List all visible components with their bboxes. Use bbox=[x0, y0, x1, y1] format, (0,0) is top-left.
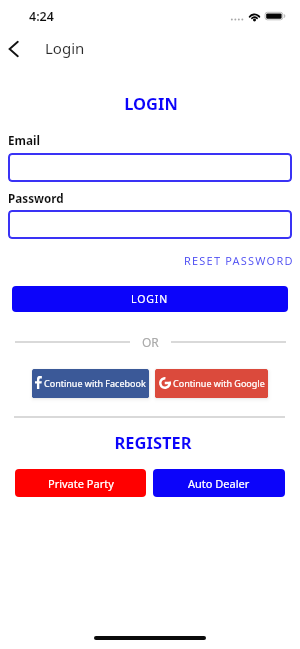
staticText: LOGIN bbox=[131, 292, 169, 306]
button[interactable]: LOGIN bbox=[12, 286, 288, 312]
staticText: Continue with Facebook bbox=[44, 377, 146, 389]
staticText: Email bbox=[8, 132, 40, 148]
button[interactable]: Back bbox=[1, 36, 27, 62]
button[interactable]: Private Party bbox=[15, 469, 146, 497]
button[interactable]: Continue with Facebook bbox=[32, 369, 149, 398]
staticText: Continue with Google bbox=[173, 377, 265, 389]
staticText: RESET PASSWORD bbox=[184, 253, 294, 268]
button[interactable] bbox=[8, 210, 292, 239]
button[interactable]: Auto Dealer bbox=[153, 469, 285, 497]
staticText: 4:24 bbox=[29, 8, 54, 25]
staticText: LOGIN bbox=[1, 92, 300, 114]
staticText: Login bbox=[45, 38, 85, 58]
staticText: OR bbox=[142, 334, 159, 350]
button[interactable] bbox=[8, 153, 292, 182]
button[interactable]: RESET PASSWORD bbox=[178, 248, 300, 273]
staticText: Password bbox=[8, 190, 64, 206]
staticText: Private Party bbox=[48, 476, 114, 491]
staticText: Auto Dealer bbox=[188, 476, 250, 491]
staticText: REGISTER bbox=[3, 431, 300, 453]
button[interactable]: Continue with Google bbox=[155, 369, 268, 398]
